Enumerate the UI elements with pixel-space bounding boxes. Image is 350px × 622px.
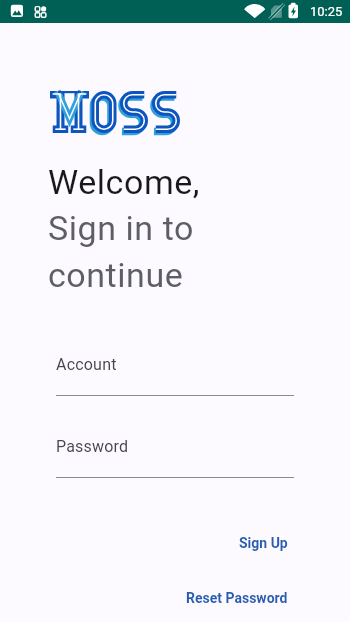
- button[interactable]: Sign Up: [235, 530, 292, 556]
- staticText: Password: [56, 437, 129, 456]
- staticText: Account: [56, 355, 117, 374]
- staticText: Welcome, Sign in to continue: [48, 162, 201, 296]
- staticText: 10:25: [310, 4, 343, 19]
- button[interactable]: Account: [56, 355, 294, 396]
- button[interactable]: Password: [56, 437, 294, 478]
- button[interactable]: Reset Password: [182, 585, 292, 611]
